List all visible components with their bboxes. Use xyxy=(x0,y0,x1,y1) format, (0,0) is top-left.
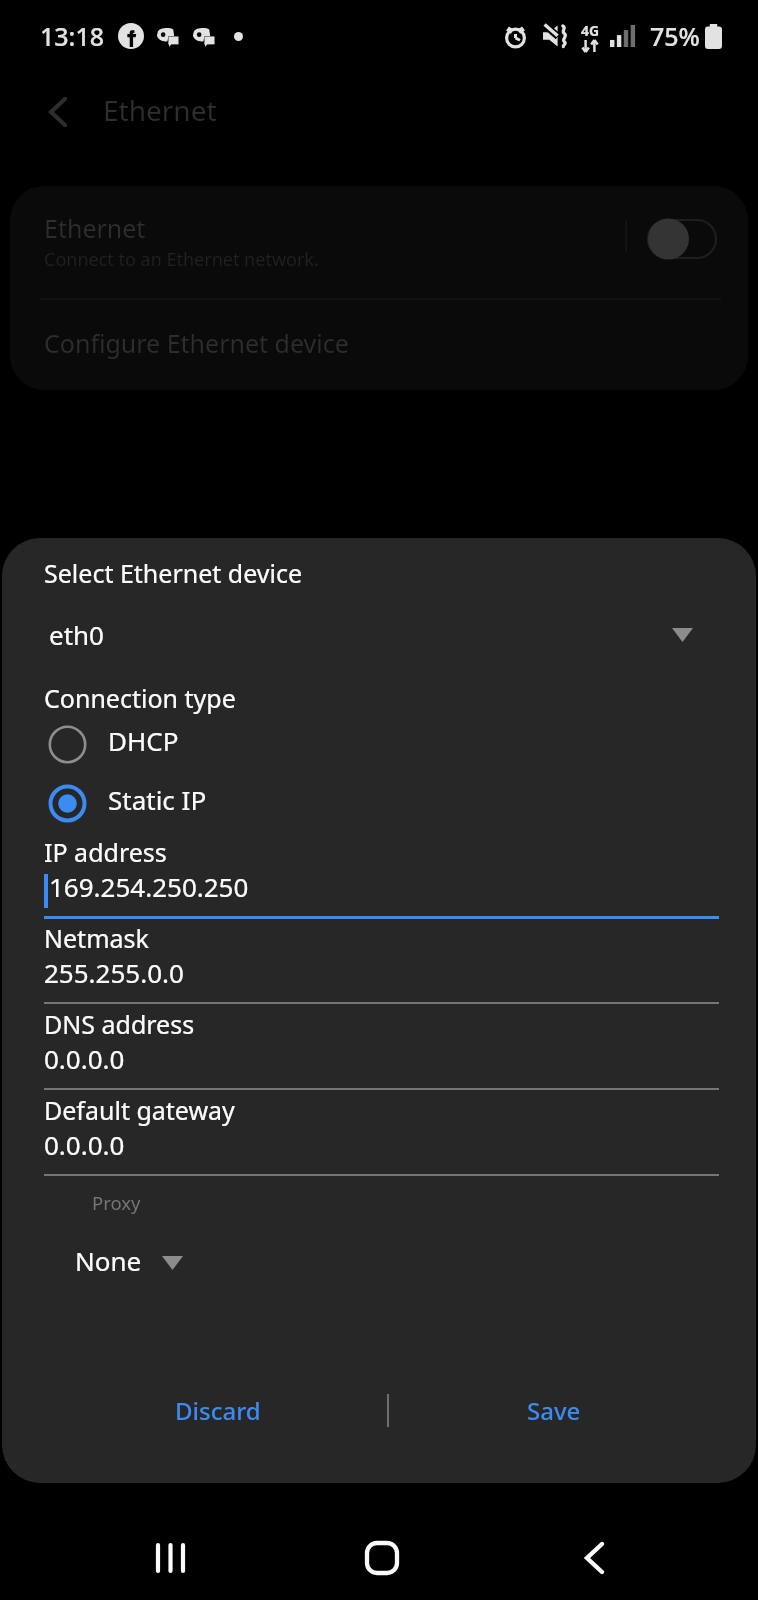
staticText: Save xyxy=(527,1394,581,1427)
staticText: Connection type xyxy=(44,681,236,715)
staticText: 13:18 xyxy=(40,19,105,53)
button[interactable]: None xyxy=(65,1232,205,1286)
staticText: Ethernet xyxy=(103,91,217,129)
button[interactable]: Recents xyxy=(129,1516,213,1600)
button[interactable]: Save xyxy=(384,1368,724,1452)
button[interactable]: Ethernet xyxy=(10,186,610,303)
staticText: eth0 xyxy=(49,617,104,652)
staticText: DNS address xyxy=(44,1007,195,1041)
button[interactable]: Static IP xyxy=(2,773,756,833)
staticText: 0.0.0.0 xyxy=(44,1127,125,1162)
staticText: IP address xyxy=(44,835,167,869)
staticText: Configure Ethernet device xyxy=(44,326,349,360)
staticText: 4G xyxy=(581,21,600,40)
button[interactable]: eth0 xyxy=(38,604,720,662)
staticText: Default gateway xyxy=(44,1093,235,1127)
staticText: 169.254.250.250 xyxy=(49,869,249,904)
staticText: Select Ethernet device xyxy=(44,556,303,590)
staticText: 255.255.0.0 xyxy=(44,955,184,990)
button[interactable]: IP address xyxy=(44,834,719,919)
button[interactable]: Configure Ethernet device xyxy=(10,303,748,390)
button[interactable]: Back xyxy=(552,1516,636,1600)
button[interactable]: Ethernet toggle, off xyxy=(638,216,720,262)
staticText: Ethernet xyxy=(44,211,146,245)
staticText: Connect to an Ethernet network. xyxy=(44,247,319,272)
staticText: Netmask xyxy=(44,921,149,955)
button[interactable]: Discard xyxy=(48,1368,388,1452)
button[interactable]: Home xyxy=(340,1516,424,1600)
staticText: Proxy xyxy=(92,1190,141,1215)
button[interactable]: Netmask xyxy=(44,920,719,1005)
button[interactable]: Default gateway xyxy=(44,1092,719,1177)
button[interactable]: DHCP xyxy=(2,714,756,774)
staticText: DHCP xyxy=(108,723,179,758)
button[interactable]: DNS address xyxy=(44,1006,719,1091)
staticText: None xyxy=(75,1243,142,1278)
staticText: 75% xyxy=(650,19,700,53)
button[interactable]: Back xyxy=(28,82,88,142)
staticText: 0.0.0.0 xyxy=(44,1041,125,1076)
staticText: Static IP xyxy=(108,782,207,817)
staticText: Discard xyxy=(175,1394,261,1427)
